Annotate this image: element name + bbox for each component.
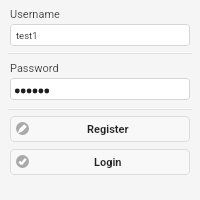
staticText: Password: [10, 62, 59, 75]
staticText: Login: [94, 156, 122, 169]
staticText: Username: [10, 8, 60, 21]
button[interactable]: test1: [10, 24, 190, 46]
other: Login: [16, 155, 29, 168]
button[interactable]: Register: [10, 116, 190, 142]
button[interactable]: Login: [10, 149, 190, 175]
staticText: Register: [87, 123, 129, 136]
other: Register: [16, 122, 29, 135]
staticText: test1: [16, 30, 38, 41]
button[interactable]: [10, 78, 190, 100]
